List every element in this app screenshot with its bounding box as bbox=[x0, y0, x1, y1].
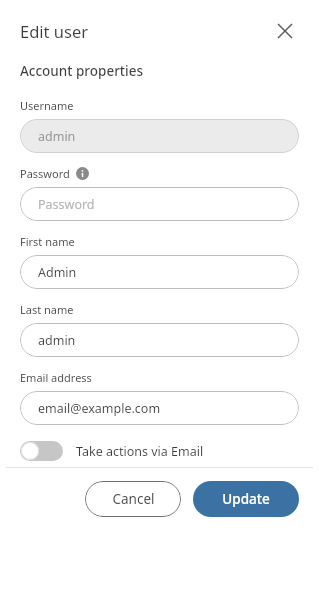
button[interactable]: Take actions via Email toggle bbox=[20, 441, 299, 461]
staticText: Take actions via Email bbox=[76, 443, 204, 460]
staticText: Edit user bbox=[20, 20, 89, 42]
staticText: Last name bbox=[20, 302, 74, 317]
staticText: Account properties bbox=[20, 62, 143, 80]
button[interactable]: Update bbox=[193, 481, 299, 517]
staticText: First name bbox=[20, 234, 75, 249]
staticText: Update bbox=[222, 490, 270, 508]
button[interactable]: Close bbox=[268, 14, 302, 48]
staticText: Password bbox=[38, 196, 95, 213]
staticText: Username bbox=[20, 98, 74, 113]
staticText: Cancel bbox=[112, 490, 155, 508]
staticText: admin bbox=[38, 332, 76, 349]
button[interactable]: Take actions via Email toggle bbox=[20, 441, 63, 461]
button[interactable]: Admin bbox=[20, 255, 299, 289]
staticText: email@example.com bbox=[38, 400, 161, 417]
staticText: Email address bbox=[20, 370, 92, 385]
button[interactable]: Cancel bbox=[85, 481, 181, 517]
button: admin bbox=[20, 119, 299, 153]
button[interactable]: email@example.com bbox=[20, 391, 299, 425]
button[interactable]: admin bbox=[20, 323, 299, 357]
button[interactable]: Password bbox=[20, 187, 299, 221]
staticText: admin bbox=[38, 128, 76, 145]
staticText: Admin bbox=[38, 264, 77, 281]
staticText: Password bbox=[20, 166, 70, 181]
button[interactable]: Password information bbox=[76, 167, 89, 180]
